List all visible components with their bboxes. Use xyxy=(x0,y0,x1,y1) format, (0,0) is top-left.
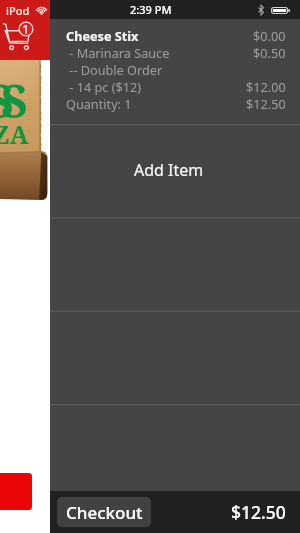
button[interactable]: Checkout xyxy=(57,497,151,527)
staticText: Quantity: 1 xyxy=(66,95,132,112)
staticText: $12.50 xyxy=(246,95,286,112)
staticText: Add Item xyxy=(134,159,204,181)
staticText: S xyxy=(1,69,28,132)
staticText: $12.00 xyxy=(246,78,286,95)
staticText: Checkout xyxy=(66,501,143,524)
staticText: S xyxy=(0,69,14,132)
button[interactable]: Place order xyxy=(0,473,32,510)
staticText: - 14 pc ($12) xyxy=(66,78,142,95)
staticText: 1 xyxy=(22,21,30,37)
staticText: - Marinara Sauce xyxy=(66,44,170,61)
staticText: 2:39 PM xyxy=(130,2,172,17)
staticText: -- Double Order xyxy=(66,61,163,78)
button[interactable]: Cheese Stix xyxy=(50,19,300,124)
staticText: ZA xyxy=(0,117,29,151)
staticText: Cheese Stix xyxy=(66,27,139,44)
staticText: iPod xyxy=(6,3,30,18)
button[interactable]: Add Item xyxy=(50,124,300,217)
staticText: $0.50 xyxy=(253,44,286,61)
button[interactable]: Shopping cart, 1 item xyxy=(2,20,34,50)
staticText: $0.00 xyxy=(253,27,286,44)
staticText: $12.50 xyxy=(231,500,286,524)
